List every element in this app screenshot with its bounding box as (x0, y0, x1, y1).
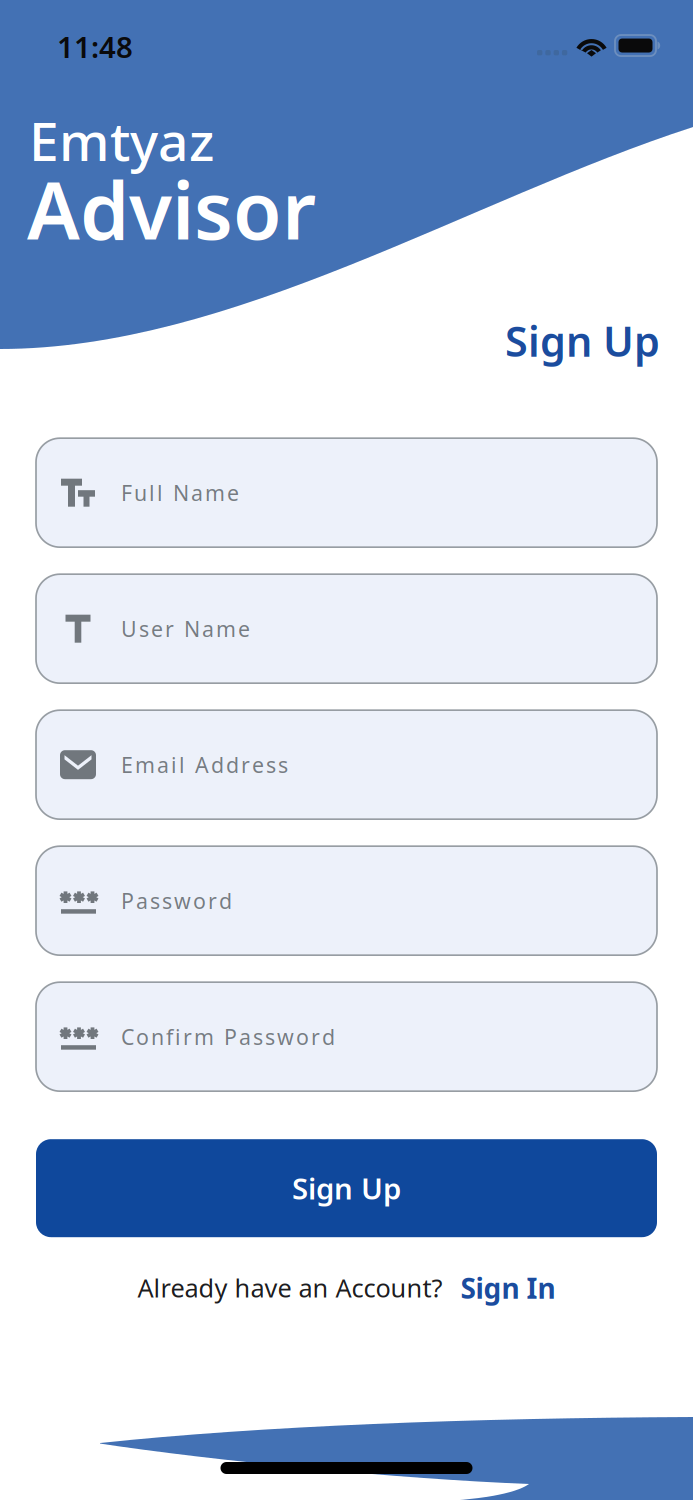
staticText: Sign In (460, 1269, 555, 1306)
button[interactable]: Sign Up (36, 1139, 657, 1237)
button[interactable]: P a s s w o r d (36, 846, 657, 955)
staticText: Advisor (27, 157, 316, 261)
staticText: Already have an Account? (137, 1271, 442, 1304)
staticText: E m a i l A d d r e s s (121, 750, 288, 779)
staticText: P a s s w o r d (121, 886, 232, 915)
button[interactable]: C o n f i r m P a s s w o r d (36, 982, 657, 1091)
staticText: U s e r N a m e (121, 614, 250, 643)
staticText: Sign Up (292, 1169, 401, 1208)
button[interactable]: E m a i l A d d r e s s (36, 710, 657, 819)
staticText: Sign Up (505, 313, 660, 368)
button[interactable]: U s e r N a m e (36, 574, 657, 683)
staticText: C o n f i r m P a s s w o r d (121, 1022, 335, 1051)
button[interactable]: F u l l N a m e (36, 438, 657, 547)
button[interactable]: Sign In (442, 1269, 555, 1306)
staticText: 11:48 (57, 27, 133, 66)
staticText: Emtyaz (29, 105, 214, 176)
staticText: F u l l N a m e (121, 478, 239, 507)
